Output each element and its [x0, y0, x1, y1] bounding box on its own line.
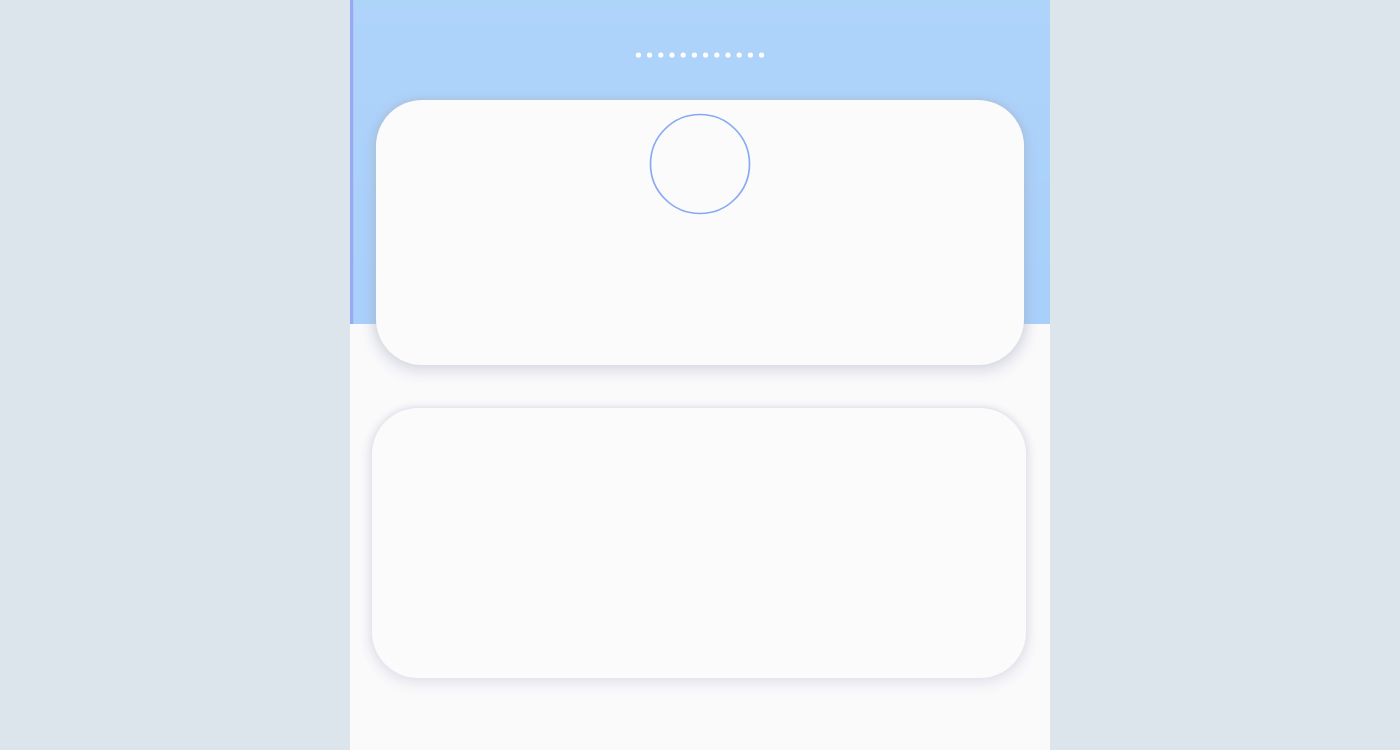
button[interactable]: Page indicator [630, 45, 769, 65]
button[interactable] [376, 100, 1024, 365]
button[interactable]: Profile photo [651, 115, 750, 214]
